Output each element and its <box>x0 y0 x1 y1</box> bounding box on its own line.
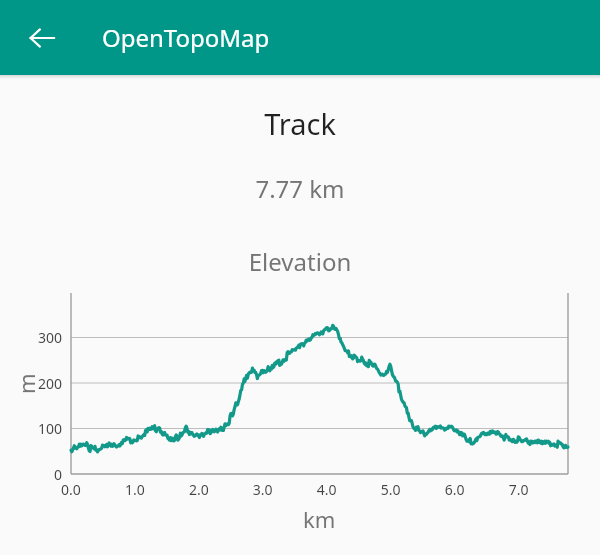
staticText: Track <box>0 104 600 143</box>
button[interactable]: Back <box>18 14 66 62</box>
staticText: Elevation <box>0 245 600 278</box>
staticText: 7.77 km <box>0 172 600 205</box>
staticText: OpenTopoMap <box>102 21 270 54</box>
